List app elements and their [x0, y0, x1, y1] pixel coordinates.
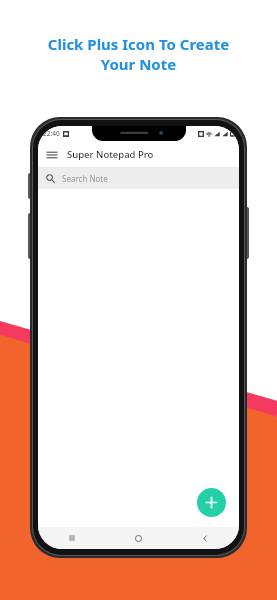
- button[interactable]: Home: [105, 527, 172, 549]
- button[interactable]: Recent apps: [38, 527, 105, 549]
- button[interactable]: Create new note: [197, 488, 226, 517]
- button[interactable]: Open navigation menu: [43, 146, 60, 163]
- staticText: Super Notepad Pro: [67, 148, 154, 161]
- button[interactable]: Back: [172, 527, 239, 549]
- staticText: Click Plus Icon To Create Your Note: [18, 34, 259, 74]
- button[interactable]: Search Note: [38, 167, 239, 189]
- staticText: 22:40: [43, 129, 60, 138]
- staticText: Search Note: [62, 173, 108, 184]
